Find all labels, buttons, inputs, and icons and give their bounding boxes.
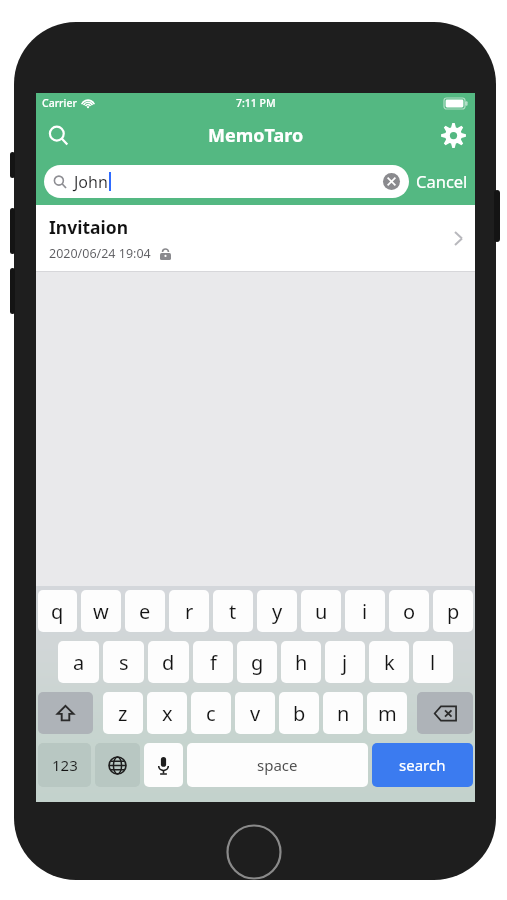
staticText: a: [73, 649, 85, 676]
button[interactable]: j: [325, 641, 365, 683]
staticText: John: [74, 171, 108, 193]
button[interactable]: v: [235, 692, 275, 734]
button[interactable]: n: [323, 692, 363, 734]
staticText: Cancel: [416, 170, 468, 192]
staticText: z: [118, 700, 128, 727]
button[interactable]: g: [237, 641, 277, 683]
button[interactable]: b: [279, 692, 319, 734]
staticText: u: [315, 598, 328, 625]
button[interactable]: x: [147, 692, 187, 734]
staticText: c: [206, 700, 216, 727]
staticText: o: [403, 598, 416, 625]
staticText: l: [430, 649, 436, 676]
staticText: 2020/06/24 19:04: [49, 245, 151, 262]
staticText: j: [342, 649, 348, 676]
button[interactable]: John: [44, 165, 409, 198]
button[interactable]: Clear text: [383, 173, 400, 190]
staticText: Invitaion: [49, 215, 129, 239]
staticText: search: [399, 755, 446, 775]
button[interactable]: e: [125, 590, 165, 632]
button[interactable]: space: [187, 743, 368, 787]
button[interactable]: y: [257, 590, 297, 632]
staticText: 123: [52, 755, 78, 775]
button[interactable]: Shift: [38, 692, 93, 734]
staticText: v: [250, 700, 261, 727]
button[interactable]: l: [413, 641, 453, 683]
button[interactable]: d: [148, 641, 189, 683]
staticText: x: [162, 700, 173, 727]
button[interactable]: search: [372, 743, 473, 787]
staticText: t: [229, 598, 237, 625]
staticText: p: [447, 598, 460, 625]
button[interactable]: t: [213, 590, 253, 632]
button[interactable]: Dictation: [144, 743, 183, 787]
button[interactable]: r: [169, 590, 209, 632]
staticText: b: [293, 700, 306, 727]
button[interactable]: w: [81, 590, 121, 632]
staticText: s: [119, 649, 129, 676]
button[interactable]: u: [301, 590, 341, 632]
button[interactable]: Cancel: [416, 170, 468, 192]
button[interactable]: p: [433, 590, 473, 632]
staticText: g: [251, 649, 264, 676]
staticText: h: [295, 649, 308, 676]
staticText: Carrier: [42, 96, 77, 110]
button[interactable]: o: [389, 590, 429, 632]
staticText: e: [139, 598, 151, 625]
staticText: m: [378, 700, 397, 727]
button[interactable]: s: [103, 641, 144, 683]
staticText: q: [51, 598, 64, 625]
button[interactable]: Delete: [417, 692, 473, 734]
staticText: space: [257, 755, 298, 775]
button[interactable]: Invitaion: [36, 205, 475, 272]
staticText: i: [362, 598, 368, 625]
staticText: f: [210, 649, 217, 676]
button[interactable]: m: [367, 692, 407, 734]
button[interactable]: a: [58, 641, 99, 683]
staticText: 7:11 PM: [236, 96, 276, 110]
button[interactable]: i: [345, 590, 385, 632]
button[interactable]: c: [191, 692, 231, 734]
button[interactable]: Search: [36, 113, 80, 157]
button[interactable]: h: [281, 641, 321, 683]
staticText: w: [93, 598, 109, 625]
staticText: d: [162, 649, 175, 676]
button[interactable]: 123: [38, 743, 91, 787]
button[interactable]: Settings: [431, 113, 475, 157]
button[interactable]: f: [193, 641, 233, 683]
button[interactable]: q: [38, 590, 77, 632]
staticText: MemoTaro: [208, 123, 304, 148]
staticText: r: [185, 598, 194, 625]
button[interactable]: z: [103, 692, 143, 734]
button[interactable]: k: [369, 641, 409, 683]
staticText: y: [272, 598, 283, 625]
button[interactable]: Change keyboard: [95, 743, 140, 787]
staticText: n: [337, 700, 350, 727]
staticText: k: [384, 649, 395, 676]
